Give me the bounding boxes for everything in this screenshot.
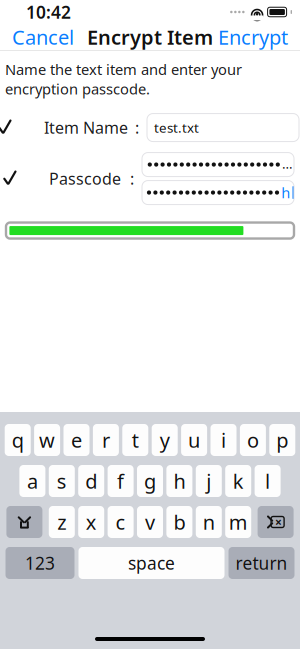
staticText: m bbox=[229, 509, 248, 535]
staticText: u bbox=[188, 427, 200, 453]
staticText: y bbox=[160, 427, 170, 453]
staticText: return bbox=[235, 551, 287, 574]
button[interactable]: o bbox=[240, 424, 266, 456]
button[interactable]: Delete bbox=[258, 506, 294, 538]
button[interactable]: v bbox=[137, 506, 163, 538]
staticText: z bbox=[57, 509, 66, 535]
staticText: Encrypt bbox=[218, 24, 288, 50]
button[interactable]: r bbox=[93, 424, 119, 456]
staticText: g bbox=[144, 468, 156, 494]
button[interactable]: d bbox=[78, 465, 104, 497]
staticText: 123 bbox=[25, 551, 55, 574]
button[interactable]: i bbox=[210, 424, 236, 456]
button[interactable]: Encrypt bbox=[212, 20, 294, 54]
staticText: space bbox=[128, 551, 175, 574]
staticText: Item Name bbox=[44, 117, 128, 138]
button[interactable]: g bbox=[137, 465, 163, 497]
button[interactable]: w bbox=[34, 424, 60, 456]
staticText: n bbox=[203, 509, 215, 535]
staticText: Cancel bbox=[12, 24, 74, 50]
button[interactable]: space bbox=[78, 547, 224, 579]
staticText: l bbox=[265, 468, 270, 494]
staticText: d bbox=[85, 468, 97, 494]
staticText: p bbox=[276, 427, 288, 453]
button[interactable]: p bbox=[269, 424, 295, 456]
staticText: w bbox=[39, 427, 55, 453]
staticText: Encrypt Item bbox=[87, 24, 213, 50]
staticText: : bbox=[130, 168, 134, 189]
button[interactable]: e bbox=[63, 424, 89, 456]
staticText: k bbox=[233, 468, 244, 494]
staticText: h bbox=[281, 183, 290, 202]
staticText: j bbox=[206, 468, 211, 494]
button[interactable]: f bbox=[108, 465, 134, 497]
staticText: test.txt bbox=[154, 119, 199, 136]
staticText: t bbox=[132, 427, 139, 453]
button[interactable]: return bbox=[228, 547, 294, 579]
staticText: b bbox=[173, 509, 185, 535]
staticText: r bbox=[102, 427, 110, 453]
button[interactable]: z bbox=[49, 506, 75, 538]
button[interactable]: 123 bbox=[5, 547, 74, 579]
button[interactable]: l bbox=[255, 465, 281, 497]
staticText: 10:42 bbox=[26, 0, 71, 23]
button[interactable]: b bbox=[166, 506, 192, 538]
button[interactable]: a bbox=[19, 465, 45, 497]
button[interactable]: m bbox=[225, 506, 251, 538]
staticText: : bbox=[135, 117, 139, 138]
staticText: a bbox=[27, 468, 38, 494]
staticText: c bbox=[116, 509, 126, 535]
staticText: x bbox=[86, 509, 97, 535]
button[interactable]: k bbox=[225, 465, 251, 497]
staticText: Passcode bbox=[49, 168, 121, 189]
staticText: o bbox=[247, 427, 259, 453]
staticText: h bbox=[173, 468, 185, 494]
staticText: × bbox=[275, 514, 282, 530]
button[interactable]: q bbox=[5, 424, 31, 456]
staticText: Name the text item and enter your encryp… bbox=[5, 60, 242, 99]
button[interactable]: y bbox=[152, 424, 178, 456]
button[interactable]: Cancel bbox=[6, 20, 80, 54]
staticText: e bbox=[71, 427, 82, 453]
button[interactable]: x bbox=[78, 506, 104, 538]
button[interactable]: c bbox=[108, 506, 134, 538]
button[interactable]: t bbox=[122, 424, 148, 456]
button[interactable]: n bbox=[196, 506, 222, 538]
button[interactable]: j bbox=[196, 465, 222, 497]
button[interactable]: h bbox=[166, 465, 192, 497]
button[interactable]: s bbox=[49, 465, 75, 497]
staticText: s bbox=[57, 468, 67, 494]
staticText: … bbox=[282, 155, 293, 172]
staticText: f bbox=[117, 468, 124, 494]
staticText: i bbox=[221, 427, 226, 453]
staticText: q bbox=[12, 427, 24, 453]
button[interactable]: Shift bbox=[6, 506, 42, 538]
button[interactable]: u bbox=[181, 424, 207, 456]
staticText: v bbox=[145, 509, 155, 535]
